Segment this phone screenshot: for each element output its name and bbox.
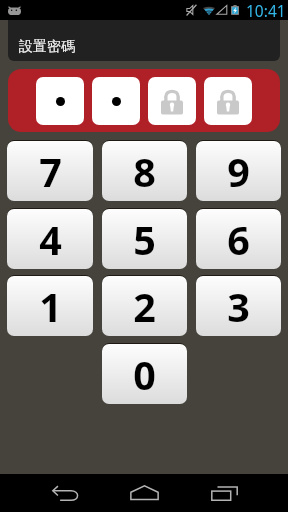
staticText: 8 bbox=[133, 145, 156, 199]
staticText: 1 bbox=[39, 280, 62, 334]
button[interactable]: 3 bbox=[196, 276, 281, 336]
staticText: 7 bbox=[39, 145, 62, 199]
staticText: 4 bbox=[39, 213, 62, 267]
staticText: 3 bbox=[227, 280, 250, 334]
button[interactable]: 2 bbox=[102, 276, 187, 336]
button[interactable] bbox=[92, 77, 140, 125]
button[interactable] bbox=[36, 77, 84, 125]
button[interactable]: Back bbox=[48, 476, 82, 510]
button[interactable]: 7 bbox=[7, 141, 93, 201]
button[interactable]: 0 bbox=[102, 344, 187, 404]
button[interactable] bbox=[204, 77, 252, 125]
staticText: 0 bbox=[133, 348, 156, 402]
staticText: 5 bbox=[133, 213, 156, 267]
button[interactable]: Recents bbox=[207, 476, 241, 510]
staticText: 10:41 bbox=[246, 0, 286, 20]
button[interactable]: 6 bbox=[196, 209, 281, 269]
button[interactable]: 4 bbox=[7, 209, 93, 269]
button[interactable] bbox=[148, 77, 196, 125]
button[interactable]: 8 bbox=[102, 141, 187, 201]
button[interactable]: 9 bbox=[196, 141, 281, 201]
staticText: 6 bbox=[227, 213, 250, 267]
staticText: 2 bbox=[133, 280, 156, 334]
button[interactable]: 1 bbox=[7, 276, 93, 336]
staticText: 9 bbox=[227, 145, 250, 199]
staticText: 設置密碼 bbox=[19, 38, 75, 56]
button[interactable]: Home bbox=[127, 476, 161, 510]
button[interactable]: 5 bbox=[102, 209, 187, 269]
